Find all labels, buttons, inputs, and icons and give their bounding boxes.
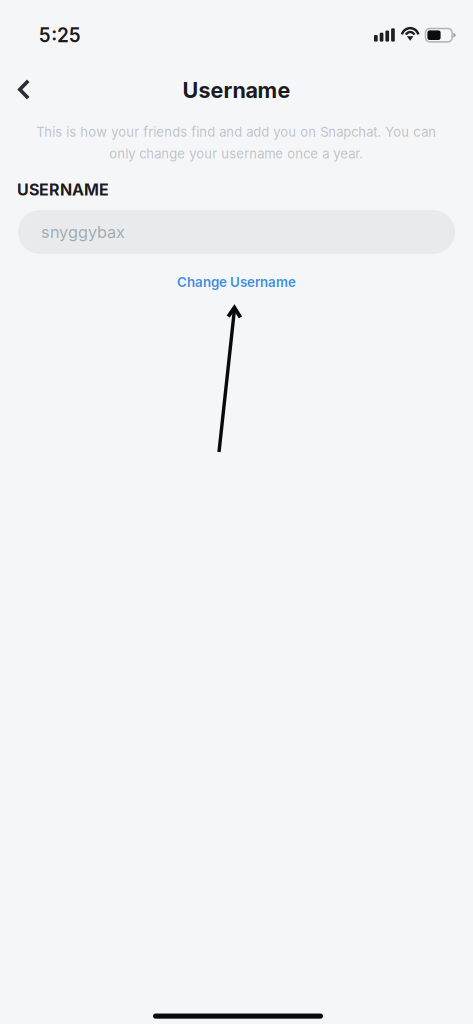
button[interactable]: snyggybax — [18, 210, 455, 254]
staticText: 5:25 — [39, 24, 81, 47]
staticText: USERNAME — [17, 180, 109, 199]
button[interactable]: Change Username — [163, 268, 310, 296]
staticText: Change Username — [177, 274, 296, 290]
staticText: snyggybax — [41, 222, 125, 242]
staticText: Username — [182, 77, 290, 103]
button[interactable]: Back — [0, 69, 48, 110]
staticText: This is how your friends find and add yo… — [36, 124, 436, 162]
